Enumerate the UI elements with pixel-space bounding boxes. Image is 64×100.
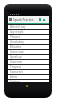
- staticText: Favourites: [10, 70, 24, 74]
- button[interactable]: Say it right: [8, 30, 49, 34]
- staticText: Alerts: [10, 75, 18, 79]
- staticText: Vocabulary: [10, 40, 24, 44]
- button[interactable]: Listen now: [8, 50, 49, 54]
- button[interactable]: Vocabulary: [8, 40, 49, 44]
- button[interactable]: Progress: [8, 65, 49, 69]
- staticText: Word of day: [10, 25, 26, 29]
- button[interactable]: More options: [43, 19, 45, 21]
- button[interactable]: Word of day: [8, 25, 49, 29]
- staticText: Listen now: [10, 50, 24, 54]
- staticText: Settings: [10, 80, 21, 82]
- button[interactable]: App icon: [8, 16, 49, 23]
- staticText: Phrases: [10, 35, 20, 39]
- button[interactable]: Settings: [8, 80, 49, 82]
- button[interactable]: Record: [39, 18, 41, 21]
- button[interactable]: Phrases: [8, 35, 49, 39]
- button[interactable]: Grammar: [8, 60, 49, 64]
- button[interactable]: Mistakes: [8, 45, 49, 49]
- button[interactable]: Alerts: [8, 75, 49, 79]
- staticText: Grammar: [10, 60, 23, 64]
- staticText: Speak up: [10, 55, 22, 59]
- button[interactable]: Favourites: [8, 70, 49, 74]
- staticText: Mistakes: [10, 45, 22, 49]
- button[interactable]: Speak up: [8, 55, 49, 59]
- staticText: Speak Practice: [13, 18, 34, 22]
- staticText: Progress: [10, 65, 22, 69]
- staticText: Say it right: [10, 30, 24, 34]
